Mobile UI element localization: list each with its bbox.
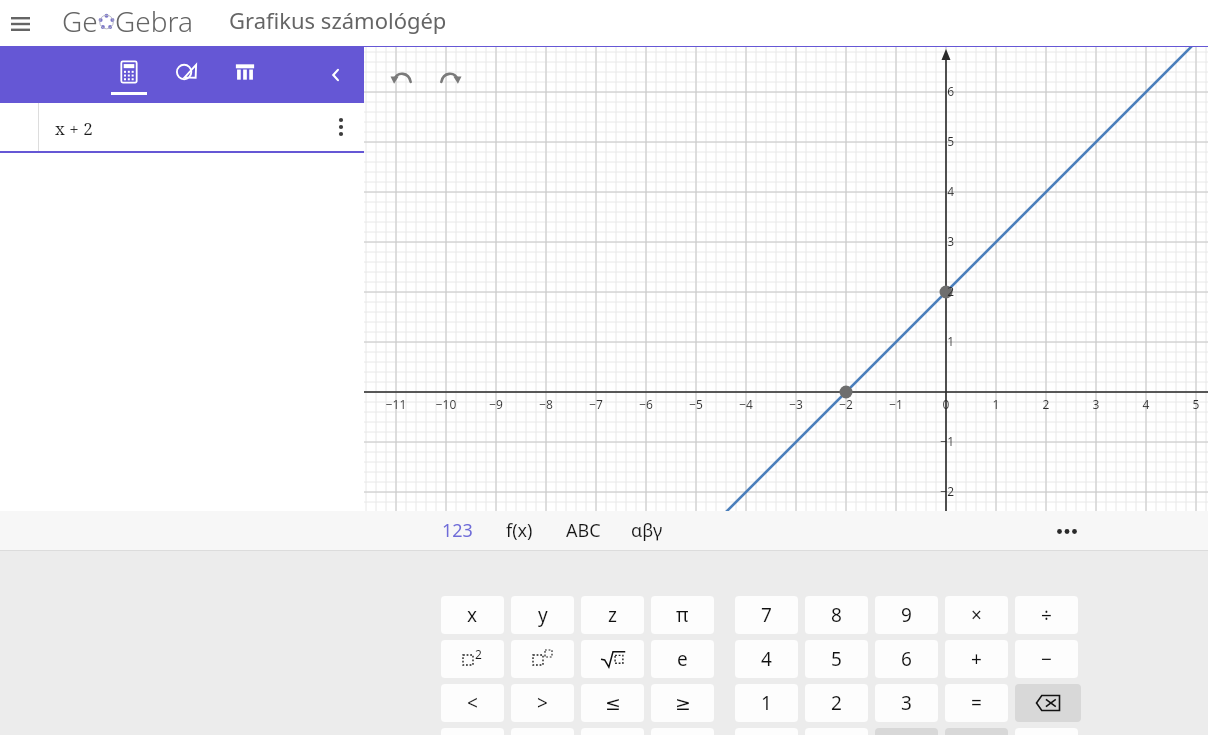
staticText: 5 bbox=[1176, 396, 1208, 412]
button[interactable]: y bbox=[511, 596, 574, 634]
button[interactable]: z bbox=[581, 596, 644, 634]
staticText: < bbox=[467, 690, 478, 716]
staticText: −1 bbox=[914, 433, 954, 449]
staticText: 4 bbox=[1126, 396, 1166, 412]
button[interactable]: = bbox=[945, 684, 1008, 722]
button[interactable]: Power bbox=[511, 640, 574, 678]
button[interactable]: ≤ bbox=[581, 684, 644, 722]
staticText: −10 bbox=[426, 396, 466, 412]
staticText: 4 bbox=[761, 646, 772, 672]
button[interactable]: 6 bbox=[875, 640, 938, 678]
staticText: x + 2 bbox=[55, 117, 93, 140]
staticText: > bbox=[537, 690, 548, 716]
button[interactable]: Backspace bbox=[1015, 684, 1081, 722]
staticText: 2 bbox=[1026, 396, 1066, 412]
button[interactable]: Square root bbox=[581, 640, 644, 678]
button[interactable]: x bbox=[441, 596, 504, 634]
staticText: 4 bbox=[914, 183, 954, 199]
staticText: 8 bbox=[831, 602, 842, 628]
staticText: −9 bbox=[476, 396, 516, 412]
staticText: ABC bbox=[566, 518, 601, 543]
staticText: −5 bbox=[676, 396, 716, 412]
staticText: −1 bbox=[876, 396, 916, 412]
button[interactable]: More keyboard options bbox=[1050, 514, 1084, 548]
button[interactable]: αβγ bbox=[631, 511, 663, 550]
button[interactable]: Undo bbox=[384, 61, 420, 97]
staticText: f(x) bbox=[506, 518, 533, 543]
button[interactable]: Table view bbox=[221, 47, 269, 103]
button[interactable]: 123 bbox=[442, 511, 473, 550]
staticText: −7 bbox=[576, 396, 616, 412]
staticText: − bbox=[1041, 646, 1052, 672]
staticText: e bbox=[677, 646, 688, 672]
button[interactable]: π bbox=[651, 596, 714, 634]
staticText: 1 bbox=[761, 690, 772, 716]
button[interactable]: + bbox=[945, 640, 1008, 678]
button[interactable]: Square bbox=[441, 640, 504, 678]
button[interactable]: 1 bbox=[735, 684, 798, 722]
button[interactable]: Redo bbox=[432, 61, 468, 97]
staticText: 5 bbox=[914, 133, 954, 149]
staticText: −6 bbox=[626, 396, 666, 412]
button[interactable]: 5 bbox=[805, 640, 868, 678]
staticText: −2 bbox=[826, 396, 866, 412]
button[interactable]: 3 bbox=[875, 684, 938, 722]
button[interactable]: 9 bbox=[875, 596, 938, 634]
staticText: x bbox=[467, 602, 478, 628]
button[interactable]: 7 bbox=[735, 596, 798, 634]
button[interactable]: f(x) bbox=[506, 511, 533, 550]
staticText: y bbox=[538, 602, 548, 628]
button[interactable]: < bbox=[441, 684, 504, 722]
staticText: 6 bbox=[901, 646, 912, 672]
button[interactable]: Algebra view bbox=[105, 47, 153, 103]
staticText: 3 bbox=[914, 233, 954, 249]
button[interactable]: Collapse panel bbox=[318, 57, 354, 93]
button[interactable]: 2 bbox=[805, 684, 868, 722]
button[interactable]: ABC bbox=[566, 511, 601, 550]
button[interactable]: 4 bbox=[735, 640, 798, 678]
button[interactable]: e bbox=[651, 640, 714, 678]
staticText: −3 bbox=[776, 396, 816, 412]
staticText: 123 bbox=[442, 518, 473, 543]
staticText: 0 bbox=[926, 396, 966, 412]
staticText: 7 bbox=[761, 602, 772, 628]
staticText: 6 bbox=[914, 83, 954, 99]
staticText: 2 bbox=[475, 646, 482, 662]
staticText: + bbox=[971, 646, 982, 672]
staticText: −4 bbox=[726, 396, 766, 412]
staticText: × bbox=[971, 602, 982, 628]
button[interactable]: ≥ bbox=[651, 684, 714, 722]
staticText: −8 bbox=[526, 396, 566, 412]
button[interactable]: ÷ bbox=[1015, 596, 1078, 634]
button[interactable]: > bbox=[511, 684, 574, 722]
staticText: ≥ bbox=[675, 692, 691, 714]
button[interactable]: × bbox=[945, 596, 1008, 634]
button[interactable]: 8 bbox=[805, 596, 868, 634]
staticText: ≤ bbox=[605, 692, 621, 714]
staticText: 2 bbox=[914, 283, 954, 299]
staticText: 1 bbox=[976, 396, 1016, 412]
button[interactable]: − bbox=[1015, 640, 1078, 678]
staticText: 3 bbox=[901, 690, 912, 716]
staticText: Ge bbox=[62, 2, 98, 40]
staticText: 3 bbox=[1076, 396, 1116, 412]
button[interactable]: Row options bbox=[326, 112, 356, 142]
button[interactable]: Tools bbox=[163, 47, 211, 103]
button[interactable]: x + 2 bbox=[0, 103, 364, 151]
staticText: −11 bbox=[376, 396, 416, 412]
button[interactable]: Menu bbox=[4, 8, 36, 40]
staticText: 1 bbox=[914, 333, 954, 349]
staticText: 2 bbox=[831, 690, 842, 716]
